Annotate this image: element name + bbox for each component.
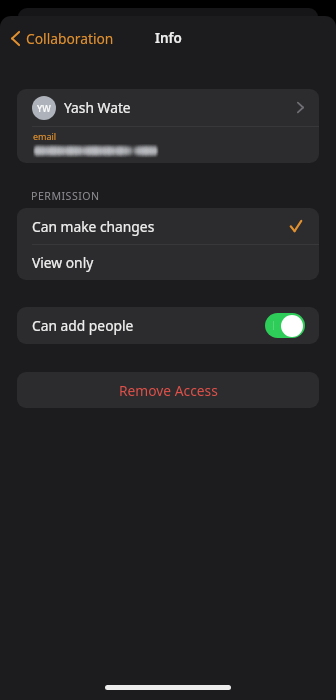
button[interactable]: Can add people [17,307,319,344]
staticText: Can add people [32,316,134,335]
staticText: YW [37,102,51,114]
staticText: Collaboration [26,29,114,48]
button[interactable]: YW [17,89,319,126]
staticText: Info [155,29,182,47]
button[interactable]: Can make changes [17,208,319,244]
staticText: View only [32,253,94,272]
staticText: Yash Wate [64,98,131,117]
staticText: PERMISSION [31,189,100,203]
staticText: email [33,130,57,142]
button[interactable]: Back to Collaboration [0,24,124,53]
staticText: Can make changes [32,217,155,236]
staticText: Remove Access [119,381,218,400]
button[interactable]: View only [17,245,319,280]
button[interactable]: Remove Access [17,372,319,408]
